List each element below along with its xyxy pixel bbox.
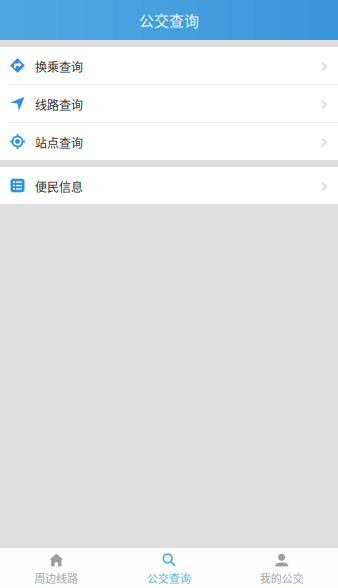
staticText: 我的公交 (260, 570, 304, 586)
staticText: 便民信息 (35, 178, 83, 195)
button[interactable]: 我的公交 (225, 548, 338, 588)
button[interactable]: 公交查询 (113, 548, 225, 588)
staticText: 周边线路 (34, 570, 78, 586)
button[interactable]: 线路查询 (0, 85, 338, 122)
staticText: 公交查询 (139, 9, 199, 31)
staticText: 换乘查询 (35, 58, 83, 75)
button[interactable]: 便民信息 (0, 167, 338, 204)
staticText: 公交查询 (147, 570, 191, 586)
button[interactable]: 换乘查询 (0, 47, 338, 84)
staticText: 线路查询 (35, 96, 83, 113)
button[interactable]: 站点查询 (0, 123, 338, 160)
button[interactable]: 周边线路 (0, 548, 113, 588)
staticText: 站点查询 (35, 134, 83, 151)
